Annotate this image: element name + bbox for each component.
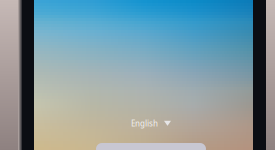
- button[interactable]: English: [126, 114, 176, 133]
- staticText: English: [131, 118, 158, 129]
